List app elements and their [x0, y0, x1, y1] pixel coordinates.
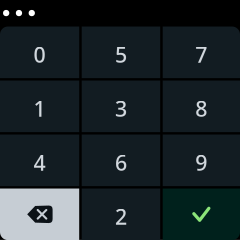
button[interactable]: 3 — [82, 80, 160, 132]
staticText: 1 — [34, 94, 46, 123]
button[interactable]: 1 — [0, 80, 79, 132]
staticText: 0 — [34, 40, 46, 69]
staticText: 3 — [115, 94, 127, 123]
button[interactable]: 7 — [163, 26, 240, 78]
staticText: 7 — [195, 40, 207, 69]
button[interactable]: 8 — [163, 80, 240, 132]
button[interactable]: 2 — [82, 188, 160, 240]
button[interactable]: Confirm — [163, 188, 240, 240]
staticText: 9 — [195, 148, 207, 177]
staticText: 2 — [115, 202, 127, 231]
staticText: 6 — [115, 148, 127, 177]
staticText: 8 — [195, 94, 207, 123]
button[interactable]: Delete — [0, 188, 79, 240]
button[interactable]: 0 — [0, 26, 79, 78]
button[interactable]: 9 — [163, 134, 240, 186]
button[interactable]: 4 — [0, 134, 79, 186]
staticText: 5 — [115, 40, 127, 69]
button[interactable]: 6 — [82, 134, 160, 186]
button[interactable]: 5 — [82, 26, 160, 78]
staticText: 4 — [34, 148, 46, 177]
